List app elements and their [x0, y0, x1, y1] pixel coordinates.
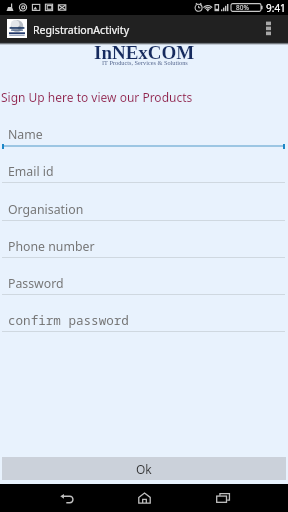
button[interactable]: Email id	[0, 152, 288, 182]
staticText: Organisation	[8, 201, 84, 218]
staticText: IT Products, Services & Solutions	[102, 59, 188, 66]
button[interactable]: Recent apps	[194, 484, 251, 512]
button[interactable]: Home	[116, 484, 173, 512]
button[interactable]: Password	[0, 264, 288, 294]
staticText: Ok	[136, 461, 152, 477]
staticText: 80%	[236, 3, 249, 12]
button[interactable]: Phone number	[0, 227, 288, 257]
button[interactable]: Organisation	[0, 190, 288, 220]
button[interactable]: More options	[256, 15, 288, 42]
staticText: Name	[8, 126, 43, 143]
staticText: Password	[8, 275, 64, 292]
staticText: InNExCOM	[94, 42, 195, 63]
button[interactable]: Name	[0, 115, 288, 145]
staticText: RegistrationActivity	[33, 23, 130, 37]
staticText: Sign Up here to view our Products	[1, 89, 193, 105]
staticText: Email id	[8, 163, 54, 180]
staticText: Phone number	[8, 238, 95, 255]
button[interactable]: Ok	[2, 457, 286, 480]
button[interactable]: Back	[38, 484, 95, 512]
button[interactable]: confirm password	[0, 301, 288, 331]
staticText: 9:41	[266, 1, 286, 15]
staticText: confirm password	[8, 312, 129, 329]
